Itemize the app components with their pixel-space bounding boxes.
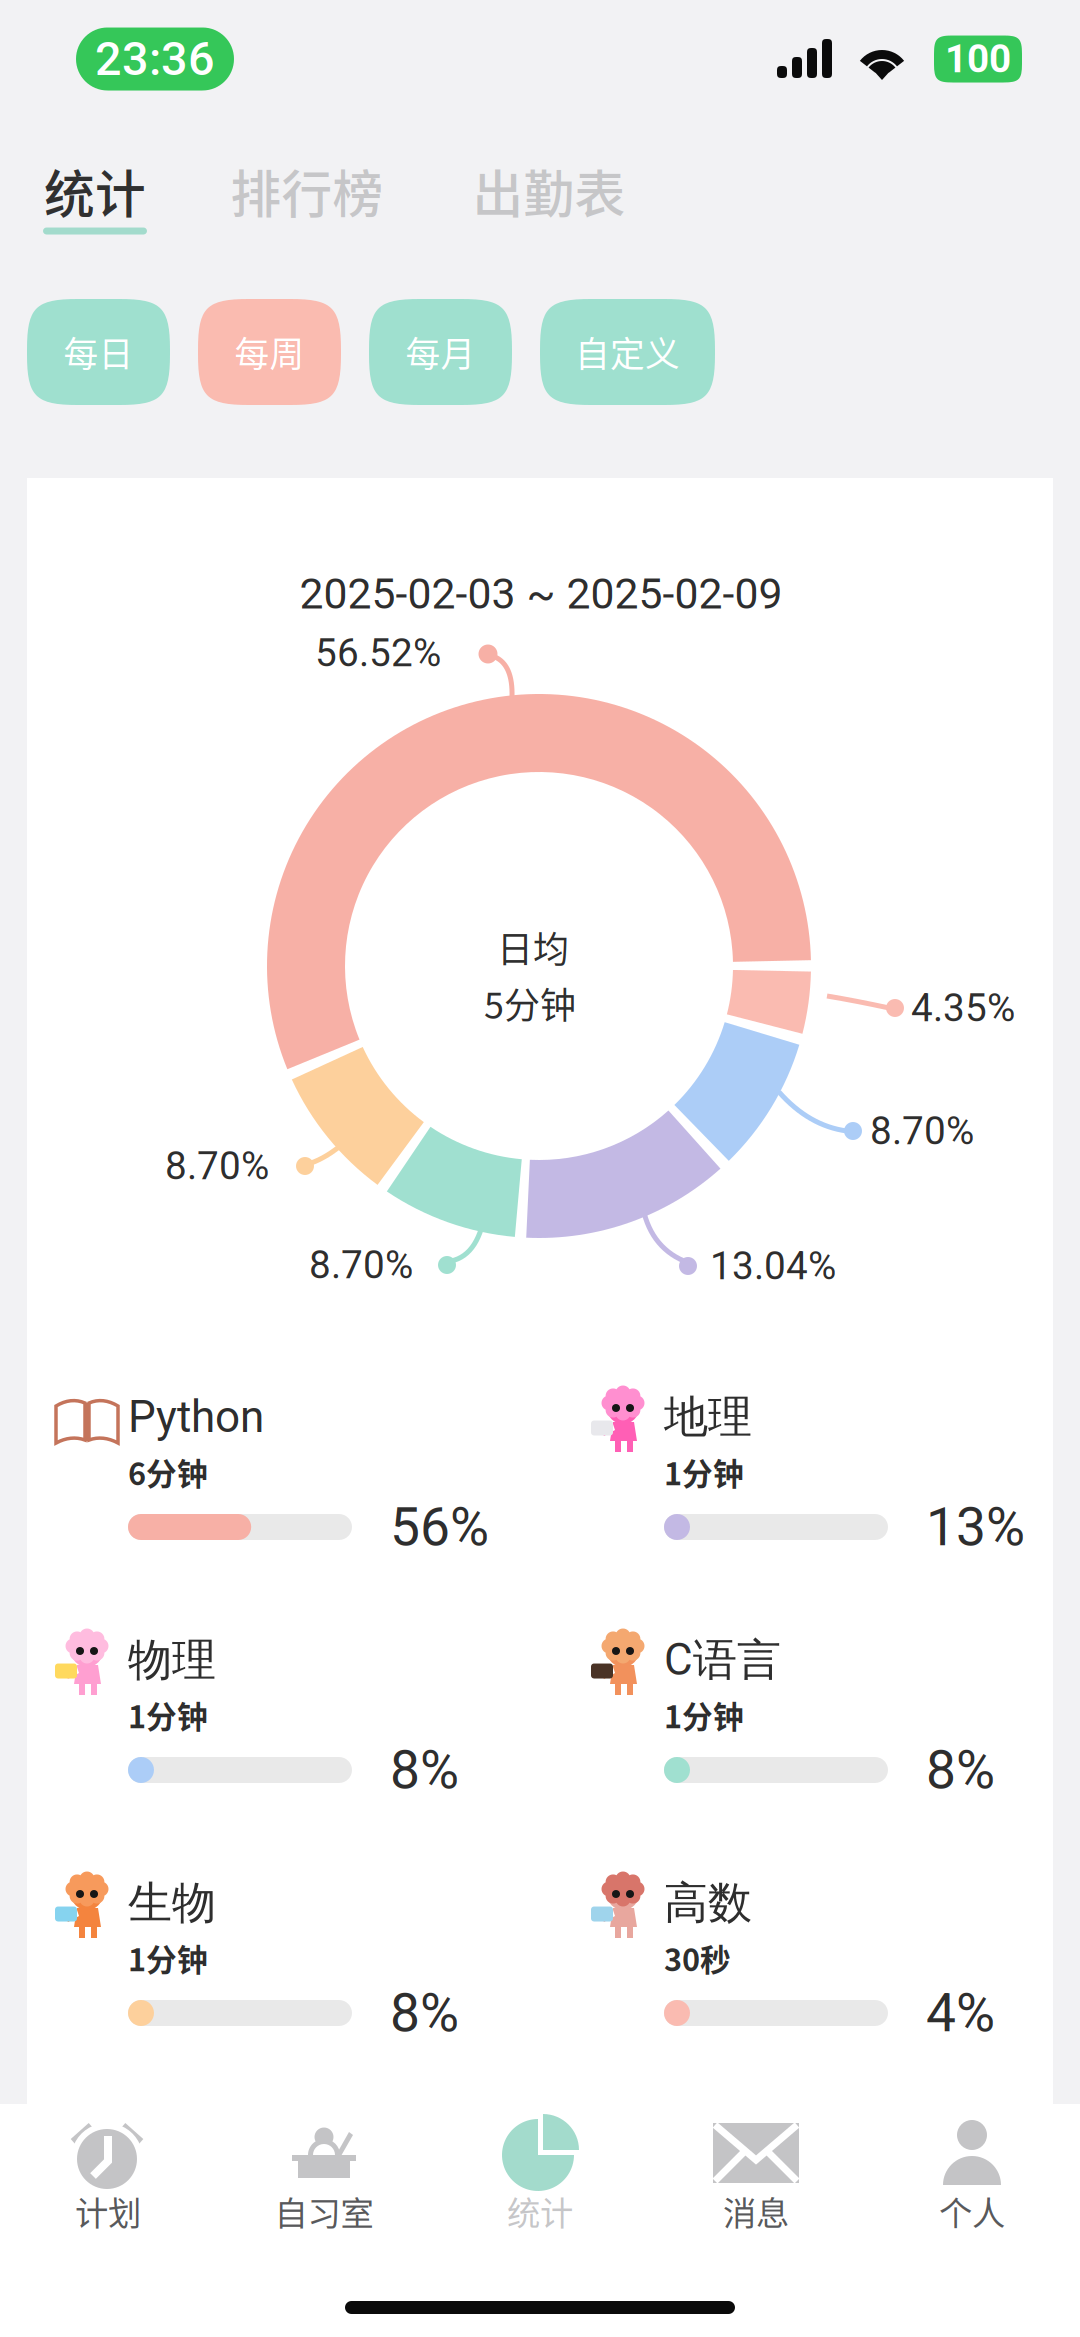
staticText: 每周 <box>234 327 304 377</box>
staticText: 统计 <box>507 2187 573 2235</box>
staticText: 4.35% <box>911 985 1015 1031</box>
staticText: 计划 <box>75 2187 141 2235</box>
staticText: 物理 <box>128 1632 216 1688</box>
staticText: 8% <box>926 1739 995 1801</box>
button[interactable]: 个人 <box>864 2104 1080 2249</box>
staticText: 个人 <box>939 2187 1005 2235</box>
button[interactable]: C语言 <box>587 1625 1035 1805</box>
staticText: 6分钟 <box>128 1450 208 1494</box>
staticText: 13.04% <box>710 1243 836 1289</box>
staticText: 1分钟 <box>664 1693 744 1737</box>
staticText: 生物 <box>128 1875 216 1931</box>
staticText: 8.70% <box>870 1108 974 1154</box>
staticText: 自习室 <box>274 2187 373 2235</box>
staticText: 8% <box>390 1739 459 1801</box>
staticText: 5分钟 <box>484 977 576 1029</box>
staticText: 地理 <box>664 1389 752 1445</box>
staticText: C语言 <box>664 1632 781 1688</box>
button[interactable]: 自习室 <box>216 2104 432 2249</box>
button[interactable]: 消息 <box>648 2104 864 2249</box>
button[interactable]: 生物 <box>51 1868 499 2048</box>
staticText: 56.52% <box>315 630 441 676</box>
staticText: Python <box>128 1391 264 1443</box>
button[interactable]: 物理 <box>51 1625 499 1805</box>
button[interactable]: 排行榜 <box>0 118 1080 299</box>
button[interactable]: 自定义 <box>540 299 715 405</box>
staticText: 消息 <box>723 2187 789 2235</box>
staticText: 13% <box>926 1496 1025 1558</box>
staticText: 4% <box>926 1982 995 2044</box>
button[interactable]: 高数 <box>587 1868 1035 2048</box>
staticText: 8.70% <box>165 1143 269 1189</box>
button[interactable]: Python <box>51 1382 499 1562</box>
staticText: 1分钟 <box>128 1693 208 1737</box>
staticText: 1分钟 <box>128 1936 208 1980</box>
button[interactable]: 统计 <box>0 118 1080 299</box>
staticText: 1分钟 <box>664 1450 744 1494</box>
staticText: 每月 <box>405 327 475 377</box>
button[interactable]: 每日 <box>27 299 170 405</box>
staticText: 出勤表 <box>472 154 625 228</box>
staticText: 56% <box>390 1496 489 1558</box>
staticText: 每日 <box>63 327 133 377</box>
staticText: 100 <box>945 36 1011 82</box>
staticText: 排行榜 <box>230 154 383 228</box>
button[interactable]: 每月 <box>369 299 512 405</box>
button[interactable]: 出勤表 <box>0 118 1080 299</box>
staticText: 30秒 <box>664 1936 731 1980</box>
staticText: 高数 <box>664 1875 752 1931</box>
staticText: 统计 <box>44 154 146 228</box>
button[interactable]: 每周 <box>198 299 341 405</box>
button[interactable]: 地理 <box>587 1382 1035 1562</box>
button[interactable]: 计划 <box>0 2104 216 2249</box>
staticText: 日均 <box>497 921 569 973</box>
staticText: 23:36 <box>95 32 215 86</box>
staticText: 8.70% <box>309 1242 413 1288</box>
staticText: 自定义 <box>575 327 680 377</box>
staticText: 8% <box>390 1982 459 2044</box>
staticText: 2025-02-03 ~ 2025-02-09 <box>299 569 782 619</box>
button[interactable]: 统计 <box>432 2104 648 2249</box>
